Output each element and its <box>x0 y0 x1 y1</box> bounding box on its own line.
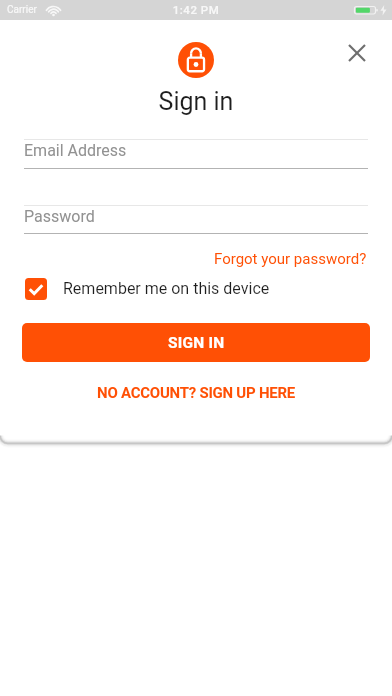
staticText: NO ACCOUNT? SIGN UP HERE <box>0 384 392 402</box>
staticText: Sign in <box>0 87 392 116</box>
button[interactable]: Email Address <box>24 139 368 169</box>
staticText: Carrier <box>7 4 37 16</box>
button[interactable]: NO ACCOUNT? SIGN UP HERE <box>0 384 392 404</box>
button[interactable] <box>337 33 377 73</box>
staticText: Email Address <box>24 141 127 160</box>
staticText: 1:42 PM <box>0 3 392 16</box>
button[interactable]: SIGN IN <box>22 323 370 362</box>
button[interactable]: Forgot your password? <box>214 250 367 268</box>
staticText: Remember me on this device <box>63 279 270 298</box>
staticText: Forgot your password? <box>214 250 367 268</box>
staticText: SIGN IN <box>168 334 225 352</box>
staticText: Password <box>24 207 95 226</box>
button[interactable]: Remember me on this device <box>25 272 285 306</box>
button[interactable]: Password <box>24 205 368 235</box>
